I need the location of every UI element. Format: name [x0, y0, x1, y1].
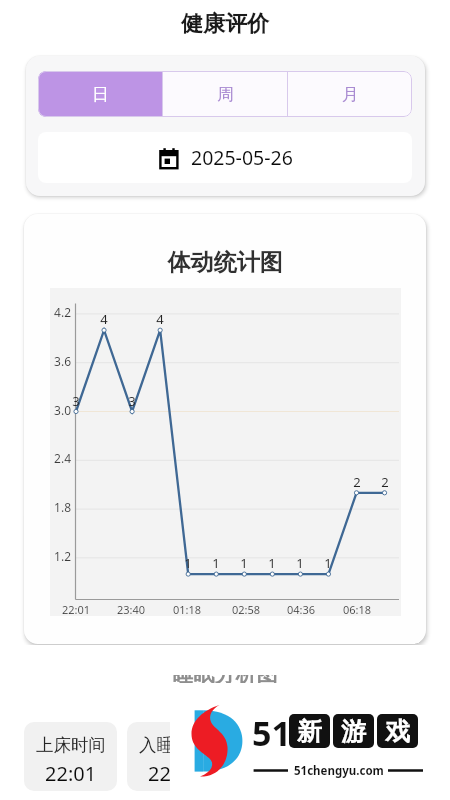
staticText: 周: [217, 84, 234, 105]
button[interactable]: 月: [288, 71, 412, 117]
button[interactable]: 上床时间: [24, 722, 117, 791]
staticText: 健康评价: [0, 10, 450, 38]
staticText: 4.2: [41, 304, 71, 320]
staticText: 01:18: [165, 602, 209, 617]
button[interactable]: 入睡时间: [127, 722, 220, 791]
staticText: 2025-05-26: [191, 144, 293, 171]
staticText: 4: [94, 310, 114, 328]
button[interactable]: 起床时间: [230, 722, 323, 791]
staticText: 睡眠分析图: [0, 661, 450, 687]
staticText: 23:40: [109, 602, 153, 617]
staticText: 1: [234, 554, 254, 572]
staticText: 22:15: [148, 760, 200, 787]
other: Pick date: [158, 147, 180, 169]
staticText: 02:58: [224, 602, 268, 617]
button[interactable]: 睡眠时长: [333, 722, 426, 791]
staticText: 3.0: [41, 402, 71, 418]
staticText: 1: [290, 554, 310, 572]
staticText: 22:01: [54, 602, 98, 617]
staticText: 体动统计图: [0, 248, 450, 277]
staticText: 月: [342, 84, 359, 105]
staticText: 日: [92, 84, 109, 105]
staticText: 3: [122, 392, 142, 410]
staticText: 3: [66, 392, 86, 410]
staticText: 1.2: [41, 548, 71, 564]
staticText: 06:18: [335, 602, 379, 617]
staticText: 1.8: [41, 499, 71, 515]
staticText: 2: [375, 473, 395, 491]
staticText: 1: [262, 554, 282, 572]
staticText: 07:12: [251, 760, 303, 787]
staticText: 3.6: [41, 353, 71, 369]
staticText: 2.4: [41, 450, 71, 466]
staticText: 04:36: [279, 602, 323, 617]
staticText: 1: [318, 554, 338, 572]
staticText: 新: [297, 716, 322, 747]
button[interactable]: 周: [163, 71, 287, 117]
staticText: 51: [252, 710, 291, 756]
staticText: 上床时间: [36, 734, 106, 756]
staticText: 游: [341, 716, 366, 747]
staticText: 1: [206, 554, 226, 572]
staticText: 戏: [385, 716, 410, 747]
staticText: 起床时间: [242, 734, 312, 756]
staticText: 1: [178, 554, 198, 572]
staticText: 22:01: [45, 760, 97, 787]
staticText: 睡眠时长: [345, 734, 415, 756]
button[interactable]: Pick date: [38, 132, 412, 183]
staticText: 51chengyu.com: [294, 763, 384, 779]
staticText: 4: [150, 310, 170, 328]
staticText: 2: [347, 473, 367, 491]
button[interactable]: 日: [38, 71, 162, 117]
staticText: 8h2m: [353, 760, 407, 787]
staticText: 入睡时间: [139, 734, 209, 756]
